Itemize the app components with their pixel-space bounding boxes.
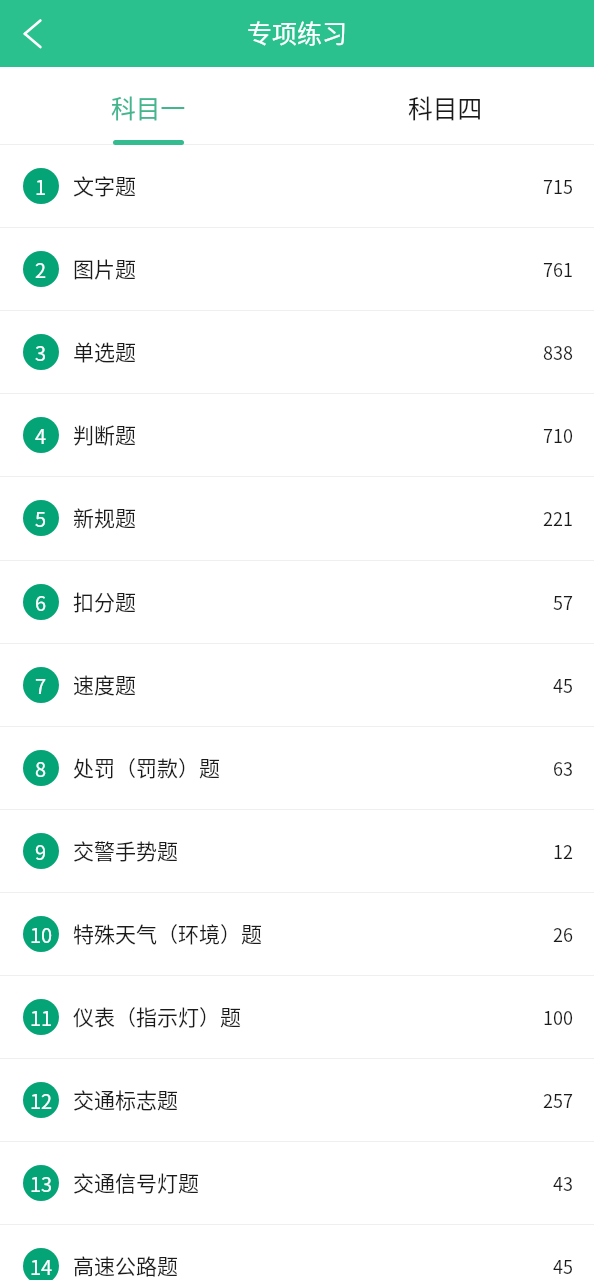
button[interactable]: 2 <box>0 227 594 310</box>
staticText: 12 <box>553 838 573 864</box>
staticText: 判断题 <box>73 419 136 449</box>
button[interactable]: 12 <box>0 1058 594 1141</box>
button[interactable]: Back <box>0 0 66 67</box>
staticText: 速度题 <box>73 669 136 699</box>
staticText: 257 <box>543 1087 573 1113</box>
staticText: 9 <box>35 837 47 866</box>
staticText: 8 <box>35 754 47 783</box>
staticText: 5 <box>35 504 47 533</box>
button[interactable]: 9 <box>0 809 594 892</box>
staticText: 1 <box>35 172 47 201</box>
staticText: 专项练习 <box>247 14 348 50</box>
button[interactable]: 8 <box>0 726 594 809</box>
staticText: 特殊天气（环境）题 <box>73 918 262 948</box>
staticText: 710 <box>543 422 573 448</box>
button[interactable]: 4 <box>0 393 594 476</box>
staticText: 4 <box>35 421 47 450</box>
staticText: 26 <box>553 921 573 947</box>
staticText: 扣分题 <box>73 586 136 616</box>
staticText: 12 <box>30 1086 53 1115</box>
staticText: 科目四 <box>408 89 483 125</box>
staticText: 单选题 <box>73 336 136 366</box>
staticText: 13 <box>30 1169 53 1198</box>
button[interactable]: 7 <box>0 643 594 726</box>
staticText: 交通标志题 <box>73 1084 178 1114</box>
staticText: 63 <box>553 755 573 781</box>
staticText: 838 <box>543 339 573 365</box>
button[interactable]: 13 <box>0 1141 594 1224</box>
staticText: 新规题 <box>73 502 136 532</box>
button[interactable]: 科目四 <box>297 67 594 144</box>
staticText: 761 <box>543 256 573 282</box>
button[interactable]: 1 <box>0 144 594 227</box>
staticText: 科目一 <box>111 89 186 125</box>
staticText: 43 <box>553 1170 573 1196</box>
staticText: 交警手势题 <box>73 835 178 865</box>
staticText: 6 <box>35 588 47 617</box>
button[interactable]: 5 <box>0 476 594 559</box>
staticText: 100 <box>543 1004 573 1030</box>
staticText: 图片题 <box>73 253 136 283</box>
staticText: 45 <box>553 672 573 698</box>
staticText: 高速公路题 <box>73 1250 178 1280</box>
staticText: 715 <box>543 173 573 199</box>
button[interactable]: 6 <box>0 560 594 643</box>
staticText: 14 <box>30 1252 53 1280</box>
staticText: 文字题 <box>73 170 136 200</box>
staticText: 57 <box>553 589 573 615</box>
button[interactable]: 11 <box>0 975 594 1058</box>
staticText: 处罚（罚款）题 <box>73 752 220 782</box>
button[interactable]: 14 <box>0 1224 594 1280</box>
button[interactable]: 科目一 <box>0 67 297 144</box>
staticText: 2 <box>35 255 47 284</box>
staticText: 45 <box>553 1253 573 1279</box>
button[interactable]: 3 <box>0 310 594 393</box>
button[interactable]: 10 <box>0 892 594 975</box>
staticText: 10 <box>30 920 53 949</box>
staticText: 3 <box>35 338 47 367</box>
staticText: 仪表（指示灯）题 <box>73 1001 241 1031</box>
staticText: 7 <box>35 671 47 700</box>
staticText: 221 <box>543 505 573 531</box>
staticText: 11 <box>30 1003 53 1032</box>
staticText: 交通信号灯题 <box>73 1167 199 1197</box>
